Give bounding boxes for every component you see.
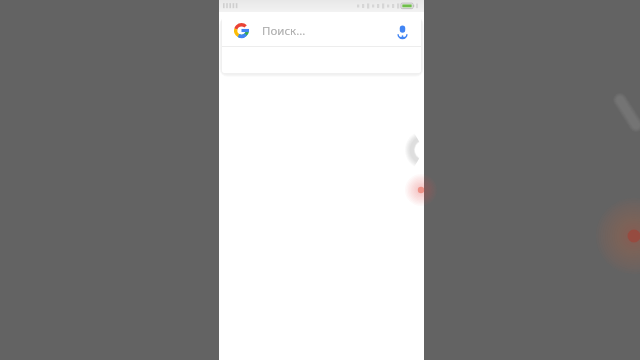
button[interactable]: Voice search <box>392 21 412 41</box>
button[interactable]: Поиск... <box>222 15 421 46</box>
staticText: Поиск... <box>262 23 306 39</box>
